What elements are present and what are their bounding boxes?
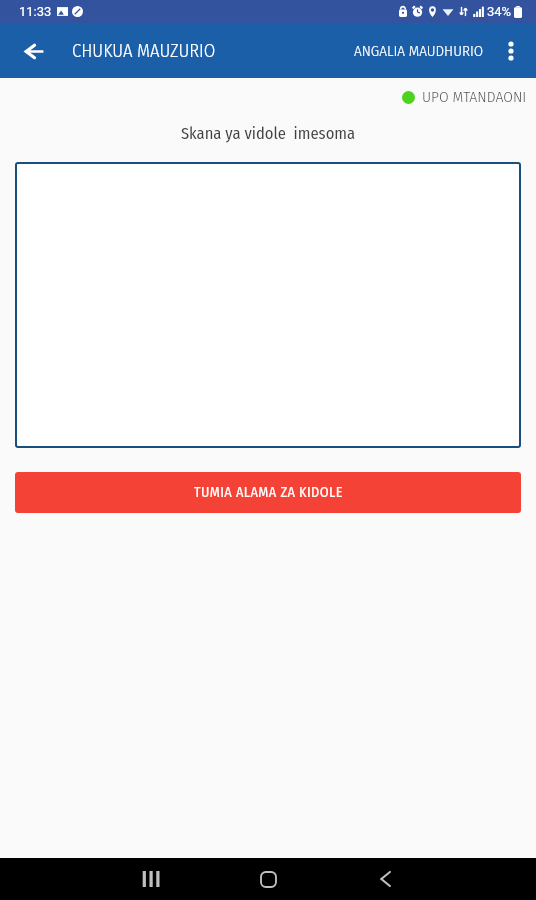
button[interactable]: Recent apps (126, 858, 174, 900)
staticText: TUMIA ALAMA ZA KIDOLE (194, 484, 343, 501)
button[interactable]: Back (13, 30, 55, 72)
staticText: 11:33 (19, 4, 52, 19)
button[interactable]: More options (490, 30, 532, 72)
staticText: 34% (487, 4, 512, 19)
button[interactable]: TUMIA ALAMA ZA KIDOLE (15, 472, 521, 513)
button[interactable]: Home (244, 858, 292, 900)
staticText: Skana ya vidole imesoma (0, 124, 536, 144)
button[interactable]: Back (361, 858, 409, 900)
staticText: UPO MTANDAONI (422, 88, 527, 107)
staticText: CHUKUA MAUZURIO (72, 40, 216, 62)
button[interactable]: ANGALIA MAUDHURIO (348, 32, 490, 70)
staticText: ANGALIA MAUDHURIO (354, 42, 484, 60)
